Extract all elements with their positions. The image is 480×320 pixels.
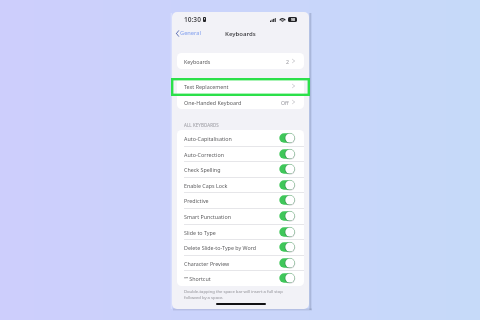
button[interactable]: Enable Caps Lock: [177, 177, 304, 193]
staticText: Predictive: [184, 197, 209, 204]
staticText: Character Preview: [184, 260, 230, 267]
button[interactable]: General: [175, 29, 202, 37]
staticText: Slide to Type: [184, 229, 216, 236]
button[interactable]: Check Spelling: [177, 161, 304, 177]
staticText: One-Handed Keyboard: [184, 99, 242, 106]
staticText: “” Shortcut: [184, 275, 211, 282]
button[interactable]: Character Preview: [177, 255, 304, 271]
other: Cellular signal: [270, 18, 275, 22]
button[interactable]: Slide to Type: [177, 224, 304, 240]
staticText: 10:30: [184, 15, 201, 24]
button[interactable]: Predictive: [177, 192, 304, 208]
staticText: Check Spelling: [184, 166, 221, 173]
button[interactable]: Smart Punctuation: [177, 208, 304, 224]
button[interactable]: Auto-Capitalisation: [177, 130, 304, 146]
button[interactable]: Text Replacement: [177, 78, 304, 94]
staticText: Delete Slide-to-Type by Word: [184, 244, 257, 251]
staticText: 98: [291, 17, 295, 22]
button[interactable]: Auto-Correction: [177, 146, 304, 162]
staticText: Double-tapping the space bar will insert…: [184, 289, 283, 300]
button[interactable]: Keyboards: [177, 53, 304, 69]
staticText: Smart Punctuation: [184, 213, 231, 220]
staticText: Keyboards: [225, 30, 256, 38]
staticText: Text Replacement: [184, 83, 229, 90]
button[interactable]: Delete Slide-to-Type by Word: [177, 239, 304, 255]
staticText: General: [180, 29, 201, 37]
other: Wi-Fi: [279, 17, 286, 22]
button[interactable]: “” Shortcut: [177, 270, 304, 286]
button[interactable]: One-Handed Keyboard: [177, 94, 304, 109]
staticText: Auto-Correction: [184, 151, 224, 158]
staticText: ALL KEYBOARDS: [184, 122, 219, 128]
staticText: Auto-Capitalisation: [184, 135, 232, 142]
staticText: Keyboards: [184, 58, 211, 65]
staticText: Off: [281, 99, 289, 106]
staticText: Enable Caps Lock: [184, 182, 228, 189]
other: Battery: [288, 17, 297, 22]
staticText: 2: [286, 58, 289, 65]
